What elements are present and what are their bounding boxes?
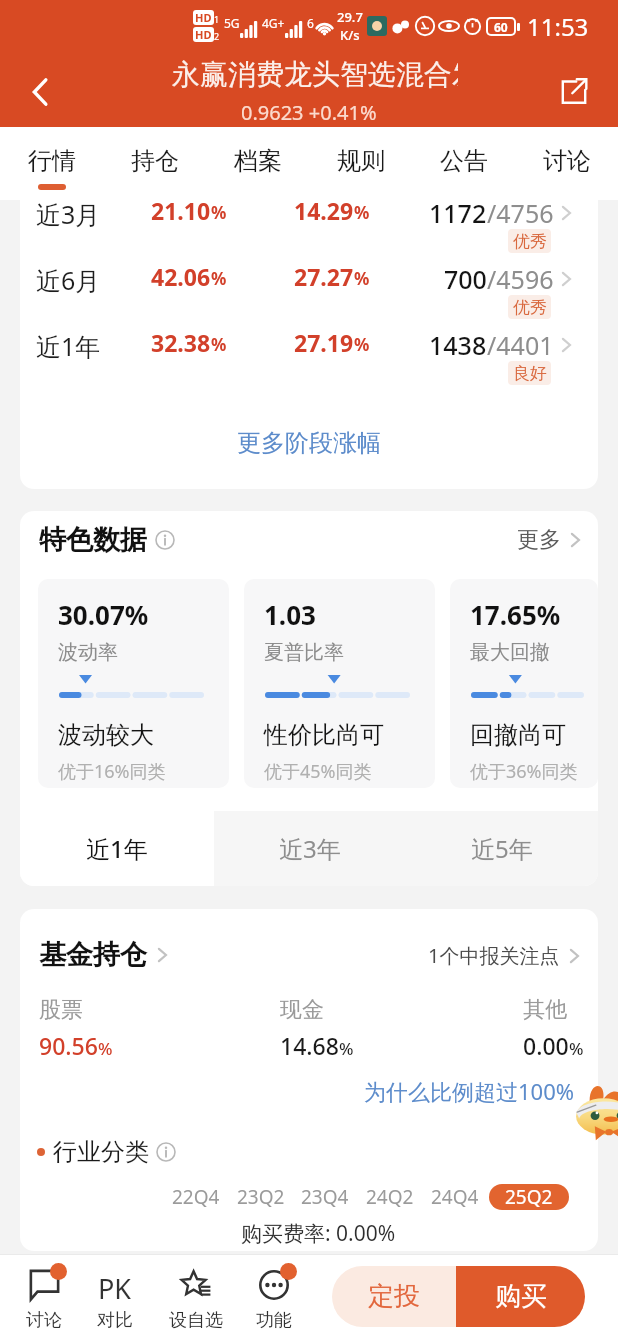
staticText: 14.29 — [294, 200, 354, 226]
staticText: 规则 — [337, 146, 385, 176]
staticText: 优于45%同类 — [264, 759, 372, 784]
button[interactable]: 购买 — [456, 1266, 585, 1327]
staticText: 波动较大 — [58, 720, 154, 750]
staticText: 42.06 — [151, 261, 211, 292]
staticText: 5G — [224, 15, 240, 31]
button[interactable]: PK — [77, 1255, 153, 1338]
staticText: PK — [98, 1270, 132, 1300]
button[interactable]: 25Q2 — [489, 1184, 569, 1210]
staticText: 永赢消费龙头智选混合发起 — [172, 57, 458, 92]
staticText: 30.07% — [58, 597, 149, 632]
button[interactable]: Share — [551, 68, 597, 114]
staticText: 公告 — [440, 146, 488, 176]
button[interactable]: 基金持仓 — [39, 938, 173, 972]
button[interactable]: 档案 — [206, 127, 309, 200]
staticText: % — [569, 1037, 584, 1060]
staticText: 功能 — [256, 1309, 292, 1332]
button[interactable]: 17.65% — [450, 579, 598, 788]
staticText: 更多 — [517, 526, 561, 554]
staticText: 1172 — [429, 200, 487, 230]
button[interactable]: 公告 — [412, 127, 515, 200]
staticText: 行业分类 — [53, 1137, 149, 1167]
button[interactable]: 功能 — [236, 1255, 312, 1338]
staticText: 夏普比率 — [264, 640, 344, 665]
staticText: 近1年 — [86, 832, 148, 865]
staticText: 0.00 — [523, 1030, 569, 1061]
button[interactable]: 1.03 — [244, 579, 435, 788]
staticText: 近3年 — [279, 832, 341, 865]
staticText: 最大回撤 — [470, 640, 550, 665]
staticText: HD — [195, 10, 212, 25]
staticText: 优于36%同类 — [470, 759, 578, 784]
staticText: HD — [195, 27, 212, 42]
staticText: 6 — [307, 15, 314, 31]
staticText: 0.9623 +0.41% — [241, 99, 377, 126]
staticText: /4756 — [487, 200, 554, 230]
staticText: 基金持仓 — [39, 938, 147, 972]
button[interactable]: 讨论 — [6, 1255, 82, 1338]
button[interactable]: 1个中报关注点 — [428, 942, 585, 969]
staticText: 1 — [214, 13, 220, 25]
staticText: 2 — [214, 30, 220, 42]
staticText: 23Q2 — [237, 1184, 285, 1210]
staticText: /4401 — [487, 328, 554, 362]
button[interactable]: 持仓 — [103, 127, 206, 200]
button[interactable]: 为什么比例超过100% — [364, 1076, 575, 1106]
staticText: 25Q2 — [505, 1184, 553, 1210]
staticText: 优秀 — [513, 231, 547, 252]
staticText: 1.03 — [264, 597, 316, 632]
button[interactable]: 22Q4 — [172, 1184, 220, 1210]
button[interactable]: 1172 — [429, 200, 577, 230]
staticText: 购买 — [495, 1280, 547, 1313]
staticText: /4596 — [487, 262, 554, 296]
button[interactable]: 行情 — [0, 127, 103, 200]
staticText: 设自选 — [169, 1309, 223, 1332]
button[interactable]: 23Q4 — [301, 1184, 349, 1210]
staticText: 60 — [494, 19, 508, 34]
button[interactable]: 更多阶段涨幅 — [20, 399, 598, 487]
staticText: 近6月 — [36, 263, 101, 297]
staticText: 90.56 — [39, 1030, 98, 1061]
button[interactable]: Back — [19, 69, 65, 115]
staticText: 17.65% — [470, 597, 561, 632]
staticText: 回撤尚可 — [470, 720, 566, 750]
staticText: 其他 — [523, 996, 567, 1024]
staticText: % — [98, 1037, 113, 1060]
button[interactable]: 更多 — [517, 520, 586, 560]
staticText: 4G+ — [262, 15, 285, 31]
staticText: 近5年 — [471, 832, 533, 865]
button[interactable]: 1438 — [429, 328, 577, 362]
button[interactable]: 700 — [444, 262, 577, 296]
staticText: 优于16%同类 — [58, 759, 166, 784]
staticText: 27.19 — [294, 327, 354, 358]
staticText: % — [211, 201, 227, 224]
staticText: 性价比尚可 — [264, 720, 384, 750]
button[interactable]: 24Q4 — [431, 1184, 479, 1210]
button[interactable]: 近1年 — [20, 811, 214, 886]
staticText: % — [211, 333, 227, 356]
staticText: 1个中报关注点 — [428, 942, 560, 969]
staticText: 优秀 — [513, 297, 547, 318]
button[interactable]: 30.07% — [38, 579, 229, 788]
button[interactable]: 近5年 — [406, 811, 598, 886]
button[interactable]: 23Q2 — [237, 1184, 285, 1210]
staticText: 更多阶段涨幅 — [237, 428, 381, 458]
button[interactable]: 24Q2 — [366, 1184, 414, 1210]
staticText: 特色数据 — [39, 523, 147, 557]
button[interactable]: 讨论 — [515, 127, 618, 200]
staticText: 股票 — [39, 996, 83, 1024]
staticText: 行情 — [28, 146, 76, 176]
staticText: 27.27 — [294, 261, 354, 292]
staticText: 对比 — [97, 1309, 133, 1332]
button[interactable]: 规则 — [309, 127, 412, 200]
staticText: 近3月 — [36, 200, 101, 231]
staticText: 讨论 — [26, 1309, 62, 1332]
staticText: 21.10 — [151, 200, 211, 226]
button[interactable] — [574, 1080, 618, 1150]
staticText: 购买费率: 0.00% — [241, 1219, 396, 1248]
button[interactable]: 近3年 — [214, 811, 406, 886]
button[interactable]: 设自选 — [158, 1255, 234, 1338]
button[interactable]: 定投 — [332, 1266, 456, 1327]
staticText: 持仓 — [131, 146, 179, 176]
staticText: 29.7 — [337, 8, 363, 26]
